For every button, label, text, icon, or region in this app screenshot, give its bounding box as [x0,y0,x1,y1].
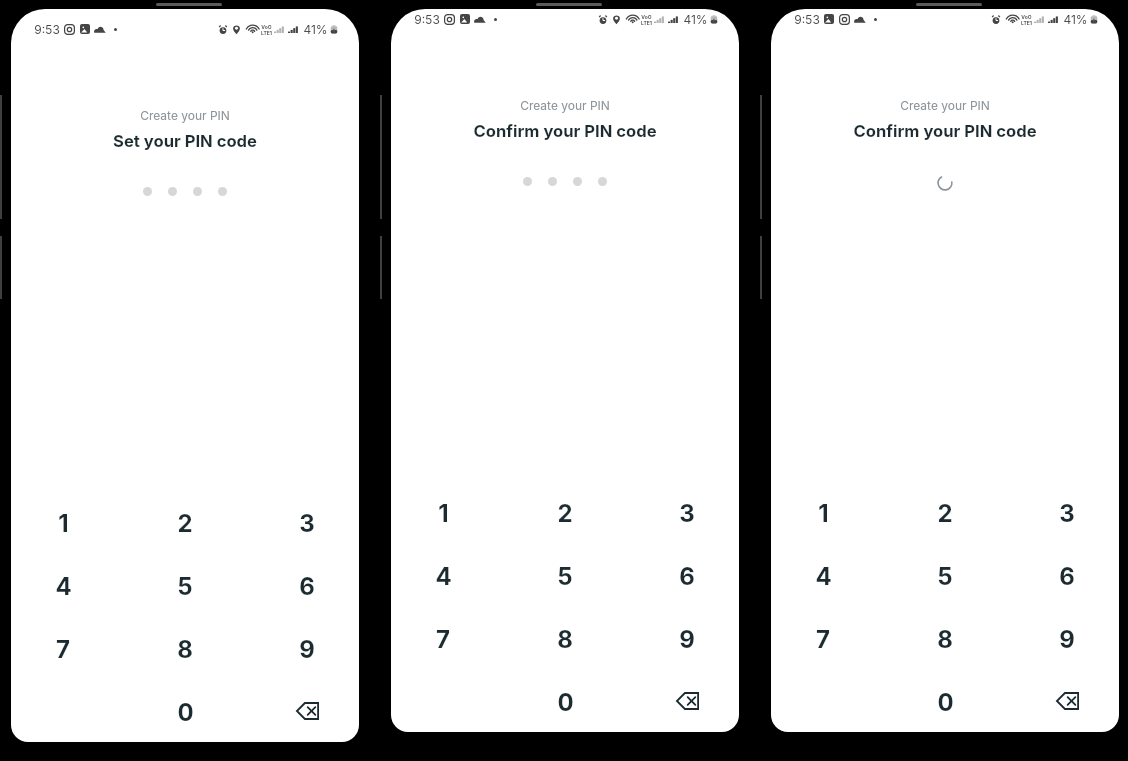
button[interactable]: 3 [271,492,343,555]
other: Cloud sync [94,24,106,35]
staticText: 6 [299,572,315,601]
staticText: 7 [436,625,450,654]
other: Backspace [1056,692,1079,710]
staticText: VoO [261,24,272,30]
staticText: 7 [816,625,830,654]
other: SIM 2 signal [288,24,298,35]
other: SIM 1 signal [1034,14,1044,25]
button[interactable]: 3 [1031,482,1103,545]
staticText: 1 [438,499,449,528]
staticText: 41% [683,12,708,27]
other: Instagram [64,24,75,35]
staticText: 9:53 [34,22,60,37]
staticText: 0 [937,688,954,717]
other: Instagram [839,14,850,25]
button[interactable]: 2 [149,492,221,555]
button[interactable]: 8 [149,618,221,681]
button[interactable]: 1 [27,492,99,555]
button[interactable]: 7 [407,608,479,671]
staticText: 5 [937,562,953,591]
other: Wi-Fi [627,14,640,25]
staticText: 9 [679,625,695,654]
button[interactable]: 4 [27,555,99,618]
other: Battery 41 percent [1090,14,1098,25]
staticText: 8 [557,625,573,654]
staticText: 4 [435,562,452,591]
other: Alarm set [992,14,1000,25]
button[interactable]: 6 [1031,545,1103,608]
other: Location in use [613,14,620,25]
staticText: Create your PIN [520,98,610,113]
staticText: 3 [1059,499,1075,528]
other: Alarm set [219,24,227,35]
staticText: 4 [55,572,72,601]
button[interactable]: 7 [27,618,99,681]
other: SIM 2 signal [668,14,678,25]
other: Battery 41 percent [710,14,718,25]
staticText: 8 [177,635,193,664]
button[interactable]: 2 [529,482,601,545]
button[interactable]: 4 [787,545,859,608]
button[interactable]: 8 [529,608,601,671]
other: SIM 1 signal [274,24,284,35]
button[interactable]: 6 [651,545,723,608]
staticText: 5 [177,572,193,601]
staticText: 2 [557,499,573,528]
staticText: 4 [815,562,832,591]
staticText: Set your PIN code [113,131,257,151]
button[interactable]: 3 [651,482,723,545]
staticText: 1 [818,499,829,528]
other: Backspace [296,702,319,720]
button[interactable]: Backspace [651,671,723,732]
staticText: 6 [679,562,695,591]
button[interactable]: 6 [271,555,343,618]
staticText: 7 [56,635,70,664]
other: Backspace [676,692,699,710]
staticText: 6 [1059,562,1075,591]
other: Battery 41 percent [330,24,338,35]
button[interactable]: 9 [271,618,343,681]
staticText: 1 [58,509,69,538]
staticText: 5 [557,562,573,591]
button[interactable]: 7 [787,608,859,671]
other: Gallery [460,14,470,24]
button[interactable]: 1 [787,482,859,545]
staticText: 9:53 [794,12,820,27]
staticText: 9 [1059,625,1075,654]
button[interactable]: 4 [407,545,479,608]
button[interactable]: Backspace [271,681,343,742]
other: Alarm set [599,14,607,25]
other: Instagram [444,14,455,25]
button[interactable]: 9 [1031,608,1103,671]
button[interactable]: 0 [149,681,221,742]
staticText: 2 [937,499,953,528]
button[interactable]: 5 [149,555,221,618]
button[interactable]: 8 [909,608,981,671]
staticText: 8 [937,625,953,654]
other: Cloud sync [474,14,486,25]
other: Wi-Fi [247,24,260,35]
staticText: 3 [679,499,695,528]
button[interactable]: 0 [529,671,601,732]
staticText: VoO [1021,14,1032,20]
button[interactable]: 5 [529,545,601,608]
staticText: Confirm your PIN code [853,121,1037,141]
button[interactable]: Backspace [1031,671,1103,732]
button[interactable]: 2 [909,482,981,545]
button[interactable]: 9 [651,608,723,671]
staticText: 0 [177,698,194,727]
button[interactable]: 0 [909,671,981,732]
other: SIM 2 signal [1048,14,1058,25]
staticText: LTE1 [641,20,652,25]
other: SIM 1 signal [654,14,664,25]
other: Gallery [80,24,90,34]
staticText: 0 [557,688,574,717]
staticText: 9:53 [414,12,440,27]
button[interactable]: 1 [407,482,479,545]
other: Location in use [233,24,240,35]
button[interactable]: 5 [909,545,981,608]
staticText: Confirm your PIN code [473,121,657,141]
